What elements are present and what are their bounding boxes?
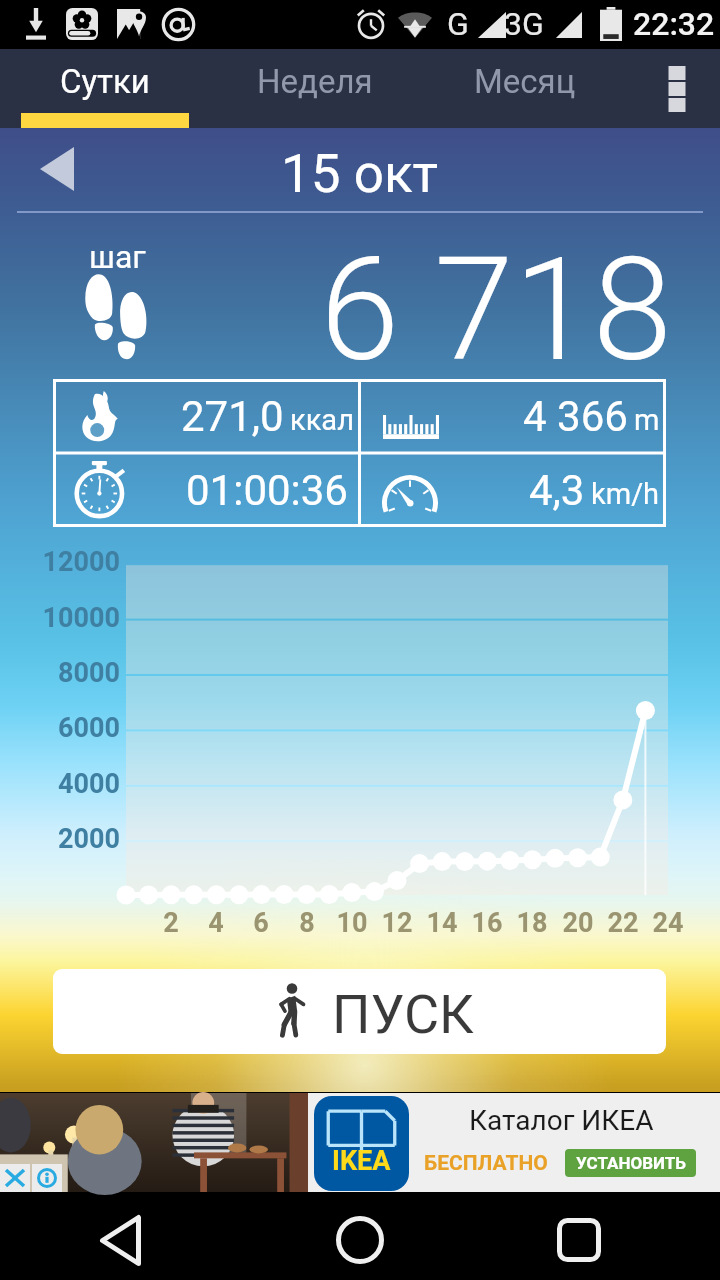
button[interactable]: Неделя: [210, 49, 420, 128]
staticText: Месяц: [474, 62, 576, 101]
button[interactable]: 4 366: [359, 379, 665, 453]
staticText: IKEA: [332, 1145, 391, 1177]
staticText: УСТАНОВИТЬ: [576, 1153, 686, 1173]
staticText: ккал: [290, 403, 354, 437]
button[interactable]: More options: [634, 49, 720, 128]
staticText: 4 366: [523, 392, 628, 441]
staticText: ПУСК: [332, 983, 474, 1046]
staticText: шаг: [89, 238, 146, 276]
button[interactable]: 271,0: [53, 379, 359, 453]
staticText: 01:00:36: [186, 466, 348, 515]
staticText: 271,0: [181, 392, 284, 441]
staticText: 8000: [0, 657, 120, 689]
staticText: km/h: [591, 477, 660, 511]
button[interactable]: Previous day: [30, 140, 84, 198]
staticText: Неделя: [257, 62, 373, 101]
button[interactable]: Месяц: [420, 49, 630, 128]
button[interactable]: ПУСК: [53, 969, 666, 1054]
staticText: Каталог ИКЕА: [469, 1104, 654, 1137]
staticText: Сутки: [60, 62, 150, 101]
staticText: 8: [277, 907, 337, 939]
staticText: 22:32: [633, 5, 715, 43]
button[interactable]: 4,3: [359, 453, 665, 527]
button[interactable]: 01:00:36: [53, 453, 359, 527]
button[interactable]: Close ad: [0, 1164, 30, 1192]
button[interactable]: Ad information: [32, 1164, 62, 1192]
staticText: 15 окт: [281, 143, 439, 205]
staticText: 16: [457, 907, 517, 939]
staticText: 2: [141, 907, 201, 939]
button[interactable]: УСТАНОВИТЬ: [565, 1149, 696, 1177]
staticText: m: [634, 403, 660, 437]
staticText: 20: [548, 907, 608, 939]
button[interactable]: Back: [60, 1200, 180, 1280]
staticText: 10: [322, 907, 382, 939]
staticText: 22: [593, 907, 653, 939]
staticText: 4: [186, 907, 246, 939]
staticText: G: [447, 5, 469, 43]
button[interactable]: Home: [300, 1200, 420, 1280]
staticText: 4000: [0, 768, 120, 800]
button[interactable]: Сутки: [0, 49, 210, 128]
staticText: 10000: [0, 602, 120, 634]
staticText: 2000: [0, 823, 120, 855]
button[interactable]: IKEA: [0, 1093, 720, 1192]
staticText: 18: [502, 907, 562, 939]
staticText: 12: [367, 907, 427, 939]
staticText: БЕСПЛАТНО: [424, 1151, 548, 1176]
staticText: 6 718: [320, 226, 673, 394]
staticText: 3G: [504, 5, 544, 43]
staticText: 12000: [0, 546, 120, 578]
staticText: 24: [638, 907, 698, 939]
staticText: 4,3: [529, 466, 585, 515]
staticText: 6: [231, 907, 291, 939]
staticText: 14: [412, 907, 472, 939]
button[interactable]: Recent apps: [519, 1200, 639, 1280]
staticText: 6000: [0, 712, 120, 744]
